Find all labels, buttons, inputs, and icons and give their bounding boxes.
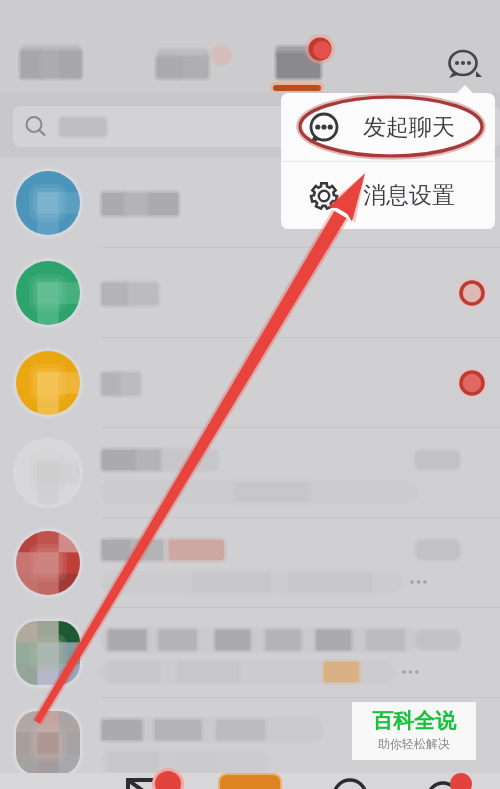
staticText: 消息设置 (363, 181, 455, 210)
button[interactable]: 发起聊天 (281, 93, 495, 161)
button[interactable]: Tab 2 (146, 40, 240, 86)
button[interactable]: Search (13, 106, 500, 147)
button[interactable]: Tab 1 (8, 40, 94, 86)
button[interactable]: Profile (400, 773, 500, 789)
button[interactable]: Conversation 3 (0, 338, 500, 428)
staticText: 发起聊天 (363, 113, 455, 142)
button[interactable]: More options (439, 39, 487, 87)
button[interactable]: Conversation 1 (0, 158, 500, 248)
button[interactable]: Contacts (300, 773, 400, 789)
staticText: 百科全说 (372, 708, 456, 734)
button[interactable]: Conversation 8 (0, 788, 500, 789)
button[interactable]: Messages tab, selected (264, 40, 340, 86)
button[interactable]: New post (200, 773, 300, 789)
staticText: 助你轻松解决 (378, 736, 450, 751)
button[interactable]: Conversation 4 (0, 428, 500, 518)
button[interactable]: Conversation 6 (0, 608, 500, 698)
button[interactable]: Conversation 7 (0, 698, 500, 788)
button[interactable]: Conversation 5 (0, 518, 500, 608)
button[interactable]: Messages (100, 773, 200, 789)
button[interactable]: 消息设置 (281, 162, 495, 229)
button[interactable]: Conversation 2 (0, 248, 500, 338)
